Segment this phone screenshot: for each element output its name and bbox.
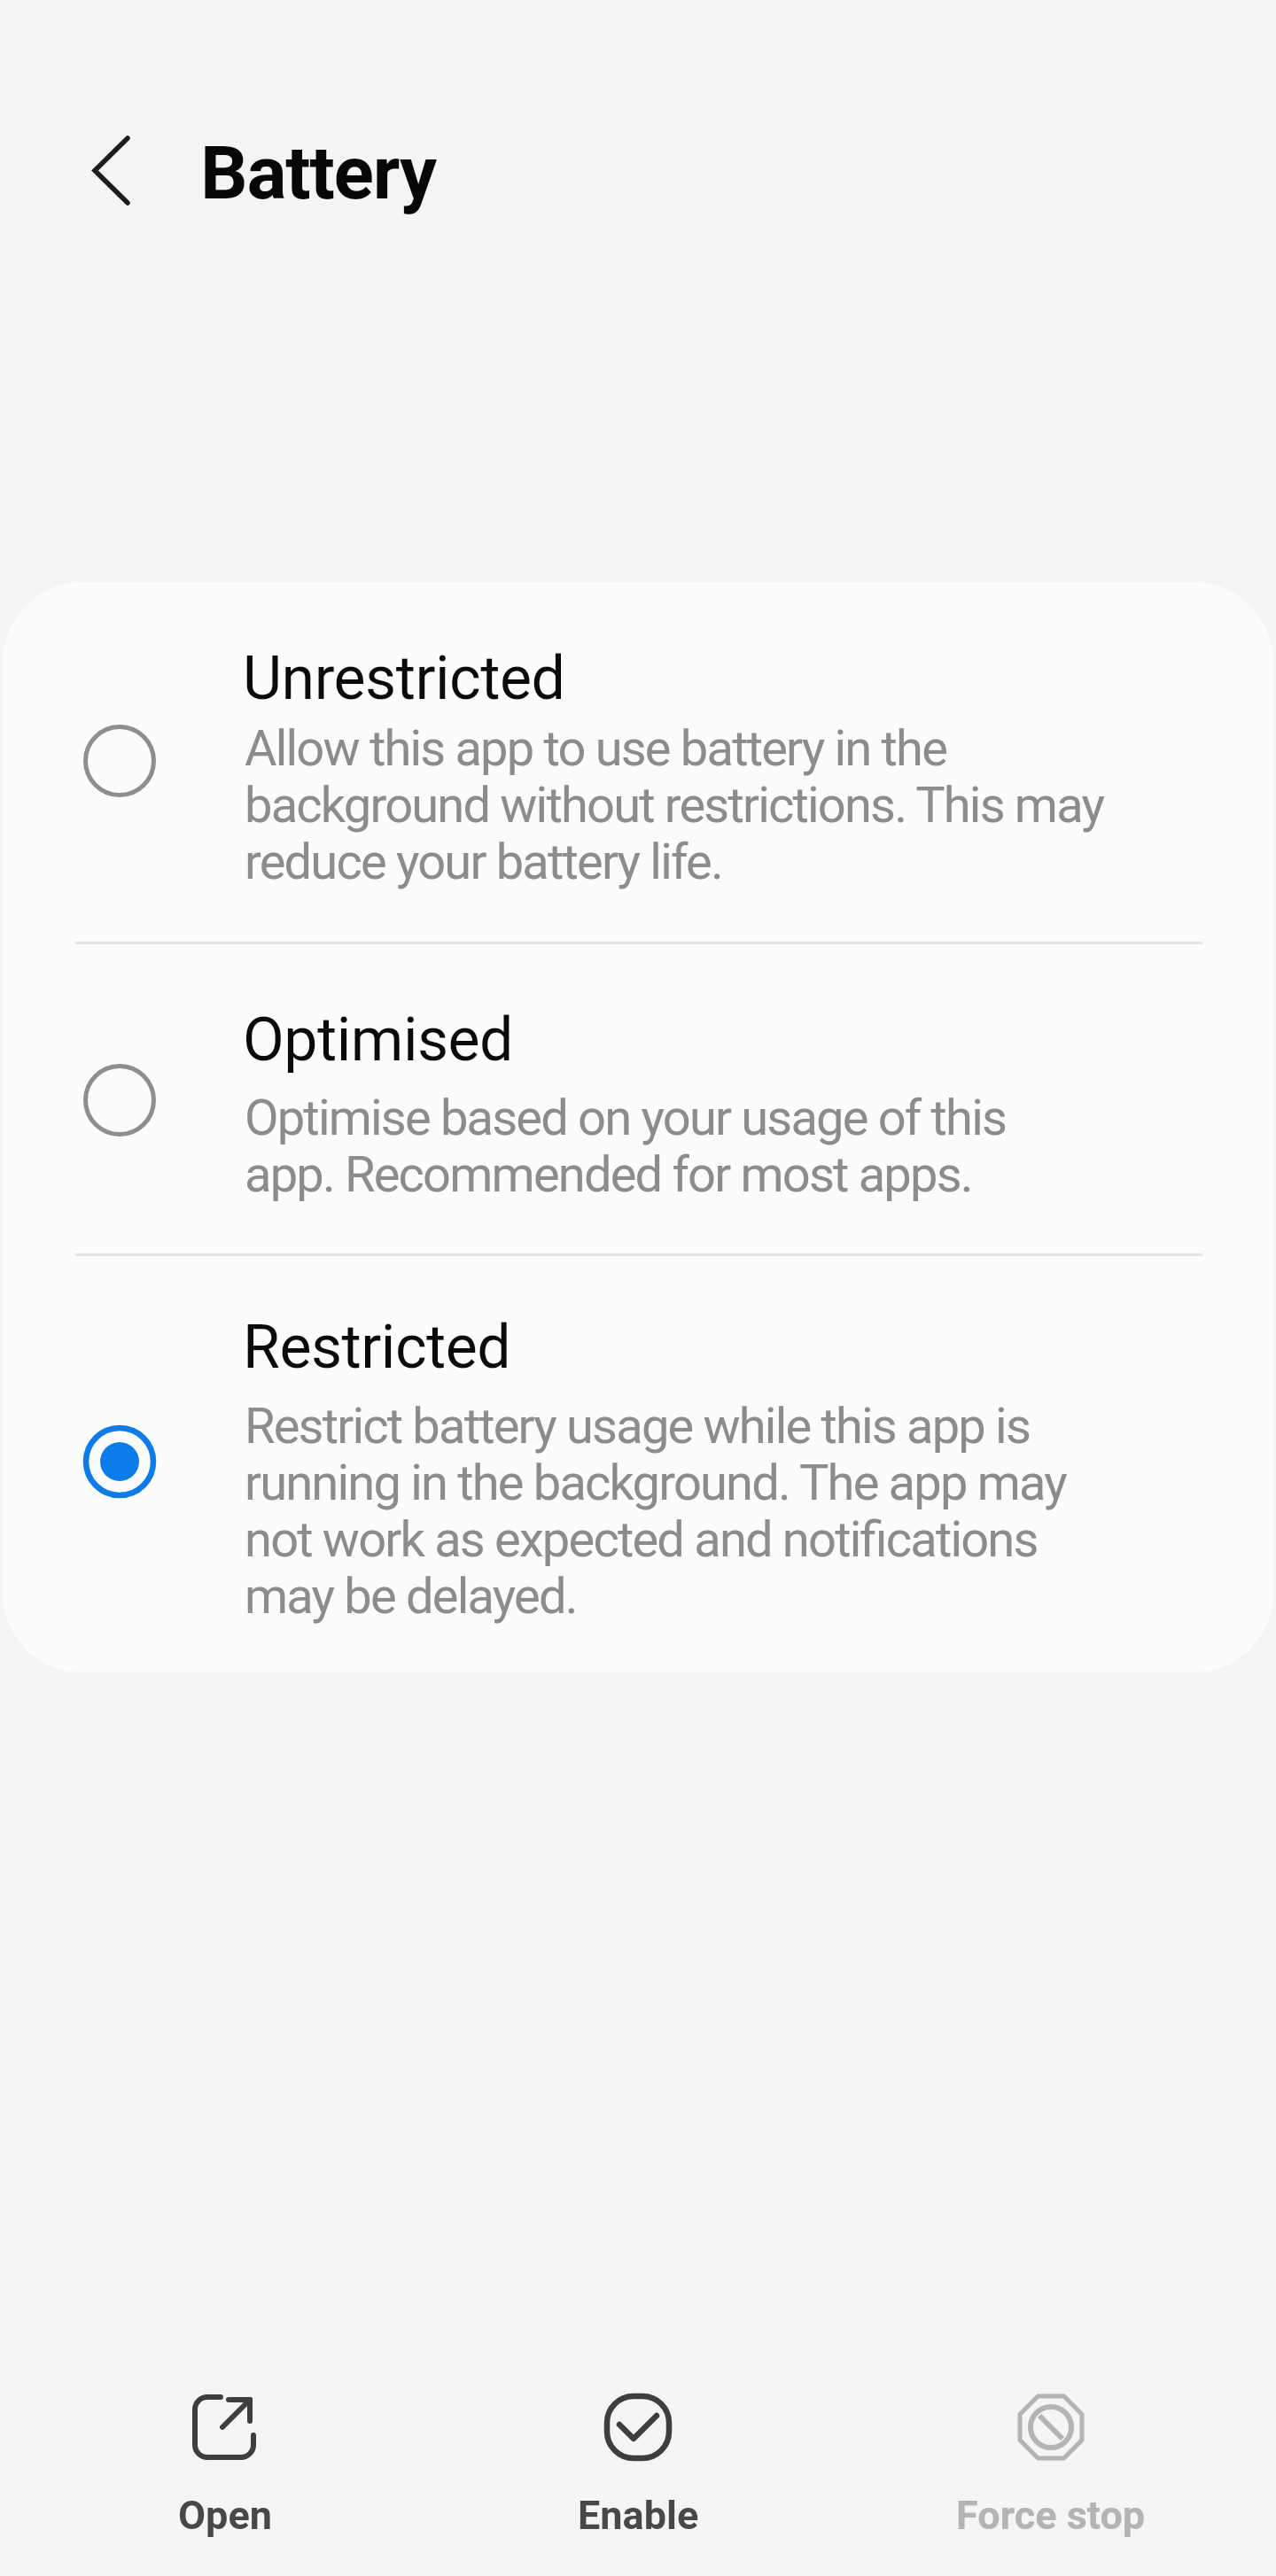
staticText: Restrict battery usage while this app is… (245, 1397, 1066, 1625)
staticText: Unrestricted (243, 643, 565, 714)
staticText: Force stop (956, 2492, 1146, 2539)
button[interactable] (3, 582, 1273, 943)
staticText: Allow this app to use battery in the bac… (245, 719, 1104, 890)
button[interactable]: Force stop (918, 2395, 1184, 2572)
staticText: Open (178, 2492, 272, 2539)
staticText: Enable (578, 2492, 699, 2539)
staticText: Optimise based on your usage of this app… (245, 1089, 1007, 1203)
button[interactable] (68, 126, 157, 214)
button[interactable] (3, 943, 1273, 1255)
button[interactable]: Open (92, 2395, 358, 2572)
staticText: Battery (200, 129, 437, 216)
button[interactable]: Enable (505, 2395, 771, 2572)
staticText: Restricted (243, 1312, 511, 1383)
button[interactable] (3, 1255, 1273, 1670)
staticText: Optimised (243, 1005, 513, 1075)
